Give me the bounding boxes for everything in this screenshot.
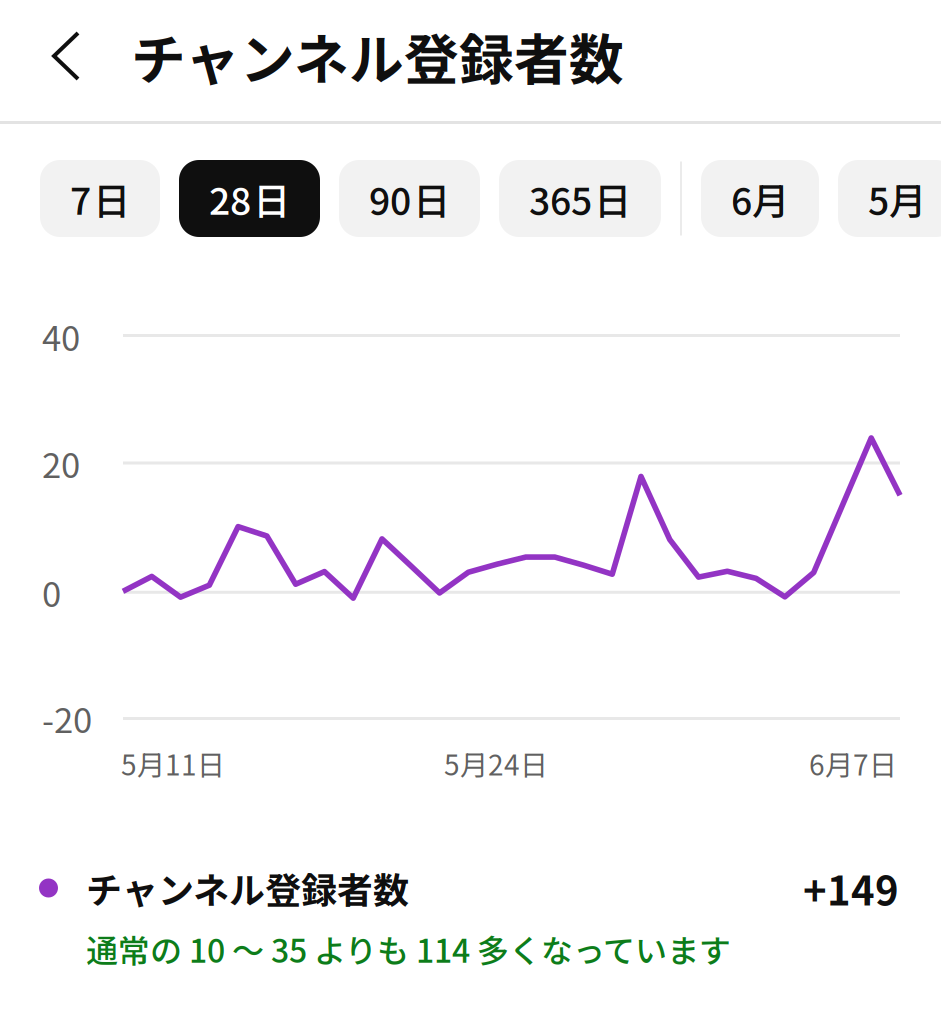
button[interactable]: 戻る bbox=[0, 0, 131, 112]
staticText: チャンネル登録者数 bbox=[86, 862, 409, 914]
staticText: -20 bbox=[42, 693, 92, 743]
staticText: 5月 bbox=[868, 171, 926, 226]
button[interactable]: 90 日 bbox=[339, 160, 480, 237]
staticText: 20 bbox=[42, 438, 80, 488]
button[interactable]: 5月 bbox=[838, 160, 941, 237]
staticText: 5月24日 bbox=[444, 743, 548, 783]
button[interactable]: 28 日 bbox=[179, 160, 320, 237]
staticText: 7 日 bbox=[70, 171, 130, 226]
staticText: チャンネル登録者数 bbox=[131, 16, 624, 96]
button[interactable]: 365 日 bbox=[499, 160, 661, 237]
staticText: 365 日 bbox=[529, 171, 631, 226]
staticText: 28 日 bbox=[209, 171, 290, 226]
staticText: 6月 bbox=[731, 171, 789, 226]
button[interactable]: チャンネル登録者数 bbox=[0, 862, 941, 972]
staticText: 90 日 bbox=[369, 171, 450, 226]
staticText: 6月7日 bbox=[809, 743, 897, 783]
staticText: 通常の 10 〜 35 よりも 114 多くなっています bbox=[86, 926, 731, 972]
staticText: 40 bbox=[42, 311, 80, 361]
staticText: +149 bbox=[803, 859, 899, 917]
button[interactable]: 7 日 bbox=[40, 160, 160, 237]
staticText: 5月11日 bbox=[121, 743, 225, 783]
staticText: 0 bbox=[42, 567, 61, 617]
button[interactable]: 6月 bbox=[701, 160, 819, 237]
